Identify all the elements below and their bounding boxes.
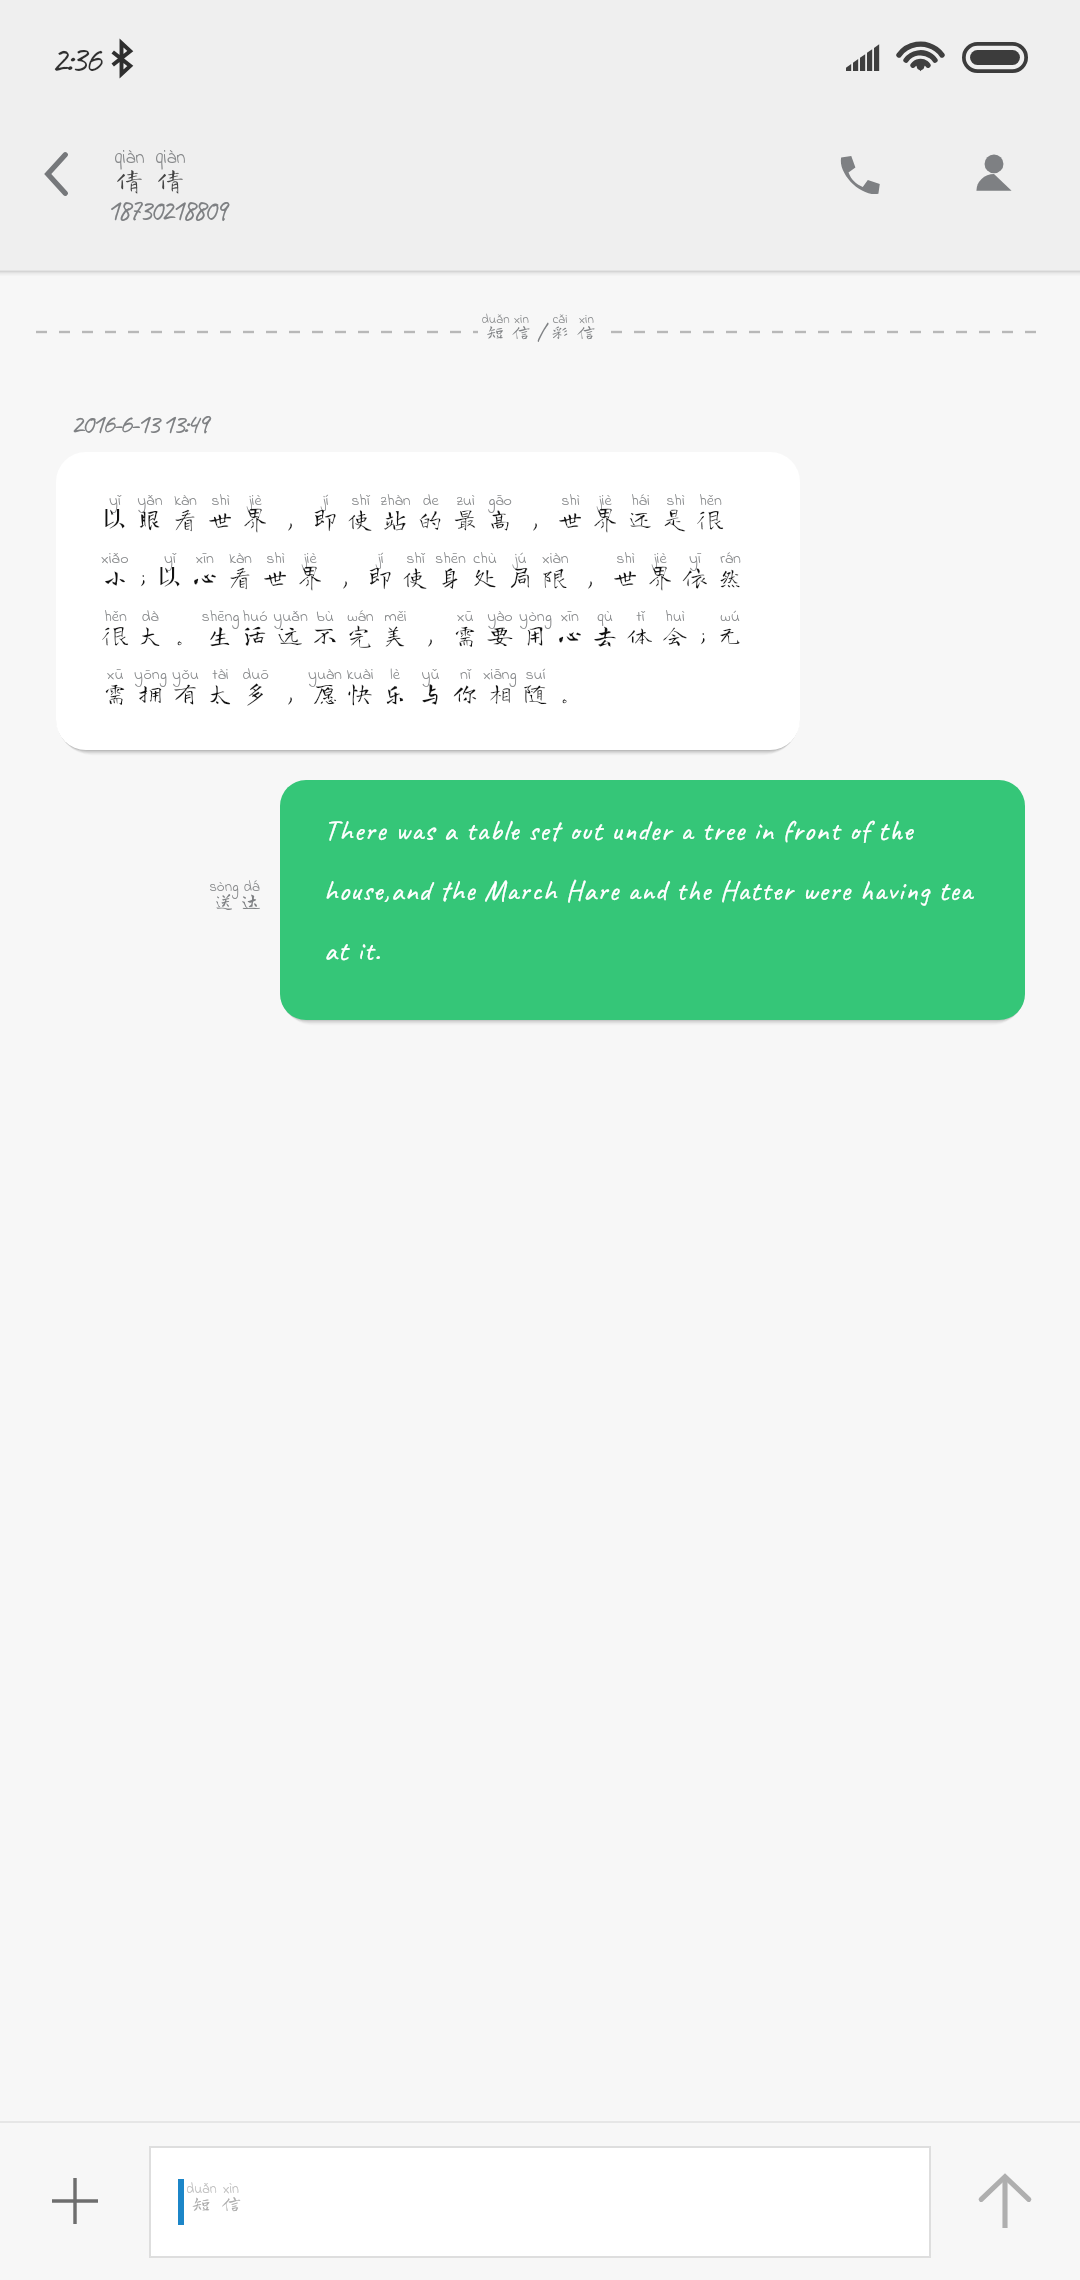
staticText: kàn (174, 489, 197, 512)
staticText: sòng (209, 876, 239, 898)
staticText: suí (525, 663, 546, 686)
staticText: shǐ (406, 547, 425, 570)
staticText: xīn (196, 547, 214, 570)
staticText: 用 (522, 622, 548, 647)
staticText: wán (347, 605, 374, 628)
staticText: yǐ (109, 489, 121, 512)
button[interactable]: duǎn (150, 2147, 930, 2257)
staticText: xiāng (483, 663, 517, 686)
staticText: xiǎo (101, 547, 129, 570)
staticText: de (422, 489, 439, 512)
staticText: huì (665, 605, 685, 628)
staticText: shǐ (351, 489, 370, 512)
staticText: 世 (612, 564, 638, 589)
staticText: 需 (452, 622, 478, 647)
staticText: yuàn (308, 663, 342, 686)
staticText: shì (266, 547, 285, 570)
staticText: 很 (697, 506, 723, 531)
staticText: hěn (699, 489, 722, 512)
staticText: 大 (137, 622, 163, 647)
staticText: 要 (487, 622, 513, 647)
staticText: 看 (172, 506, 198, 531)
staticText: bù (316, 605, 334, 628)
staticText: 心 (192, 564, 218, 589)
staticText: 界 (647, 564, 673, 589)
staticText: 达 (241, 890, 261, 910)
staticText: xiàn (542, 547, 569, 570)
staticText: yōng (134, 663, 167, 686)
staticText: 界 (297, 564, 323, 589)
staticText: ， (277, 506, 303, 531)
staticText: 远 (277, 622, 303, 647)
staticText: 倩 (116, 166, 143, 193)
staticText: 以 (102, 506, 128, 531)
staticText: 乐 (382, 680, 408, 705)
staticText: 完 (347, 622, 373, 647)
staticText: / (537, 318, 545, 347)
staticText: 愿 (312, 680, 338, 705)
staticText: There was a table set out under a tree i… (324, 812, 974, 968)
staticText: 的 (417, 506, 443, 531)
staticText: lè (390, 663, 400, 686)
staticText: yī (689, 547, 701, 570)
staticText: ; (140, 564, 145, 589)
staticText: 无 (717, 622, 743, 647)
staticText: tǐ (636, 605, 645, 628)
staticText: 局 (507, 564, 533, 589)
staticText: 然 (717, 564, 743, 589)
staticText: qù (597, 605, 613, 628)
staticText: xū (107, 663, 124, 686)
button[interactable]: Back (6, 112, 106, 236)
staticText: 界 (242, 506, 268, 531)
staticText: duǎn (481, 310, 510, 329)
button[interactable]: There was a table set out under a tree i… (280, 780, 1025, 1020)
button[interactable]: yǐ (56, 452, 800, 750)
staticText: 18730218809 (106, 190, 225, 229)
button[interactable]: Call (800, 112, 920, 236)
staticText: qiàn (114, 145, 145, 173)
staticText: ; (700, 622, 705, 647)
staticText: 体 (627, 622, 653, 647)
staticText: wú (720, 605, 740, 628)
staticText: 依 (682, 564, 708, 589)
staticText: yǎn (137, 489, 163, 512)
staticText: dà (141, 605, 159, 628)
staticText: yǔ (421, 663, 440, 686)
staticText: jiè (248, 489, 262, 512)
button[interactable]: Send (950, 2143, 1060, 2259)
staticText: yào (487, 605, 513, 628)
button[interactable]: Contact details (934, 112, 1054, 236)
staticText: 与 (417, 680, 443, 705)
staticText: yǐ (164, 547, 176, 570)
staticText: 世 (262, 564, 288, 589)
staticText: 不 (312, 622, 338, 647)
staticText: yǒu (172, 663, 199, 686)
staticText: jiè (303, 547, 317, 570)
staticText: 多 (242, 680, 268, 705)
staticText: 倩 (157, 166, 184, 193)
staticText: 短 (191, 2193, 211, 2212)
staticText: ， (332, 564, 358, 589)
staticText: shì (561, 489, 580, 512)
staticText: 2016-6-13 13:49 (70, 404, 207, 442)
staticText: dá (243, 876, 260, 898)
button[interactable]: Add attachment (20, 2143, 130, 2259)
staticText: chù (473, 547, 497, 570)
staticText: duō (242, 663, 269, 686)
staticText: 信 (221, 2193, 241, 2212)
staticText: 处 (472, 564, 498, 589)
staticText: 拥 (137, 680, 163, 705)
staticText: 是 (662, 506, 688, 531)
staticText: 站 (382, 506, 408, 531)
staticText: 短 (486, 322, 504, 340)
staticText: 身 (437, 564, 463, 589)
staticText: 眼 (137, 506, 163, 531)
staticText: 信 (512, 322, 530, 340)
staticText: qiàn (155, 145, 186, 173)
staticText: nǐ (460, 663, 471, 686)
staticText: měi (384, 605, 407, 628)
staticText: jiè (598, 489, 612, 512)
staticText: 看 (227, 564, 253, 589)
staticText: xìn (514, 310, 529, 329)
staticText: 随 (522, 680, 548, 705)
